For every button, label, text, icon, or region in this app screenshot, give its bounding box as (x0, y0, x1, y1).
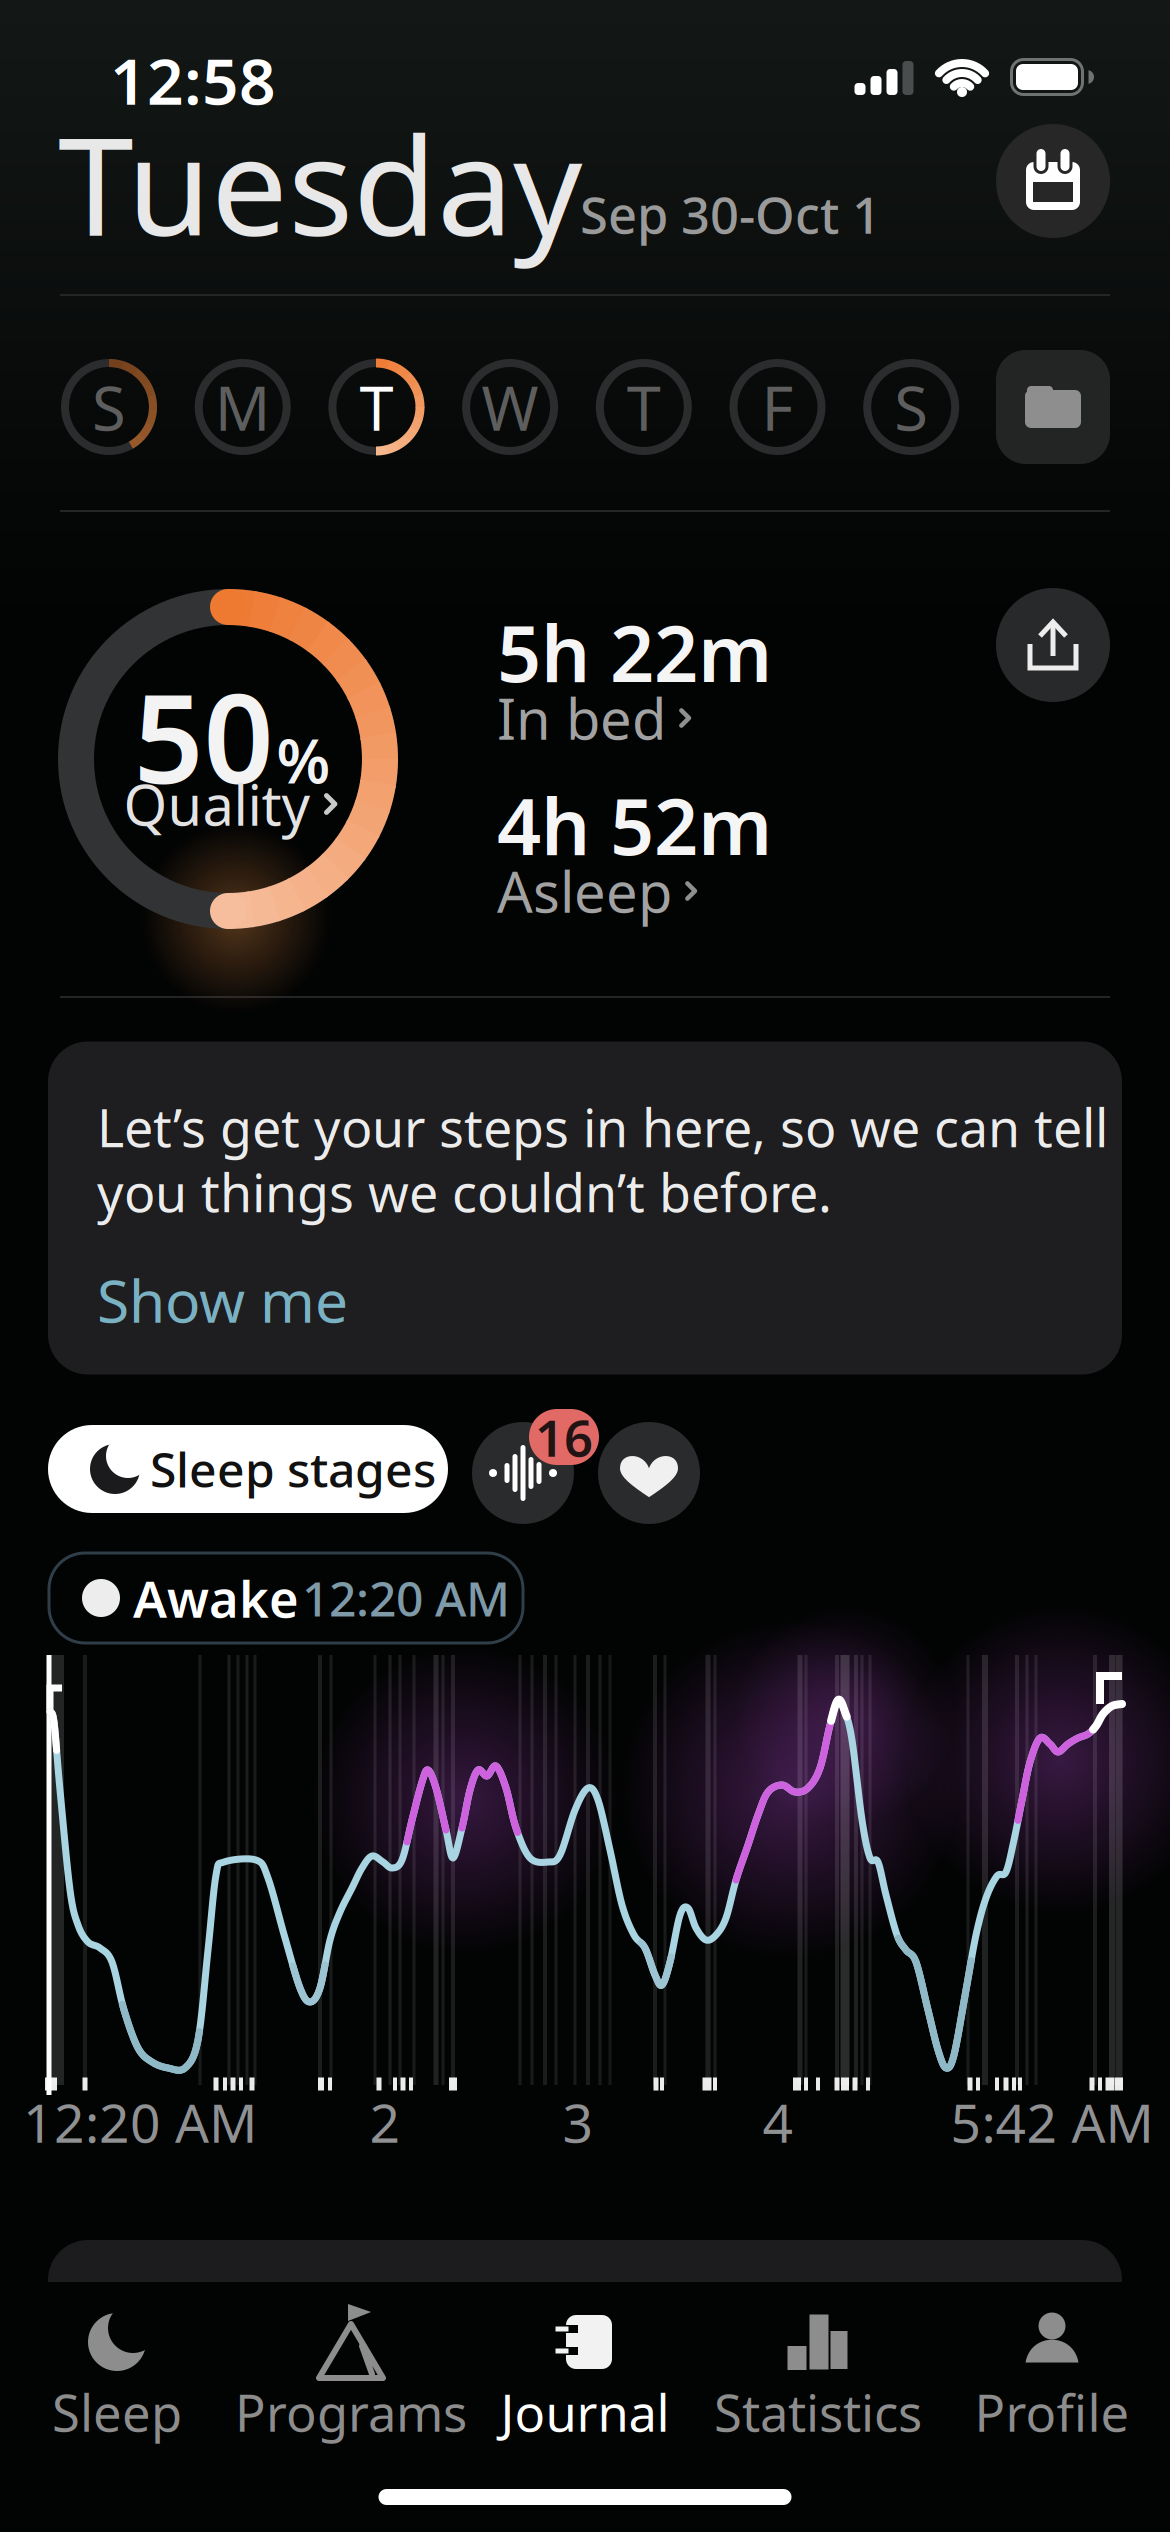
button[interactable]: Sleep stages (48, 1425, 448, 1513)
staticText: S (894, 366, 928, 448)
staticText: 12:20 AM (302, 1566, 510, 1630)
staticText: Awake (133, 1564, 299, 1632)
button[interactable]: Awake (47, 1551, 524, 1644)
button[interactable]: T (594, 357, 694, 457)
staticText: 5h 22m (497, 601, 772, 703)
staticText: Sleep (52, 2378, 182, 2446)
button[interactable]: Journal (475, 2302, 695, 2442)
button[interactable]: M (193, 357, 293, 457)
staticText: Asleep (497, 854, 672, 928)
staticText: Programs (235, 2378, 467, 2446)
staticText: 4h 52m (497, 774, 772, 876)
staticText: 50 (133, 655, 273, 817)
staticText: W (482, 366, 539, 448)
button[interactable]: Show me (97, 1265, 397, 1335)
staticText: Sep 30-Oct 1 (580, 180, 881, 248)
staticText: Tuesday (58, 93, 582, 273)
staticText: you things we couldn’t before. (97, 1157, 832, 1227)
staticText: 5:42 AM (950, 2087, 1153, 2157)
button[interactable] (996, 124, 1110, 238)
staticText: 12:20 AM (23, 2087, 257, 2157)
staticText: Sleep stages (150, 1437, 436, 1501)
staticText: Quality (123, 767, 310, 841)
staticText: 3 (562, 2087, 593, 2157)
staticText: In bed (497, 681, 666, 755)
button[interactable]: Programs (221, 2302, 481, 2442)
staticText: 4 (762, 2087, 793, 2157)
button[interactable]: Profile (952, 2302, 1152, 2442)
button[interactable] (598, 1422, 700, 1524)
button[interactable]: S (59, 357, 159, 457)
staticText: T (627, 366, 661, 448)
button[interactable]: 50 (102, 678, 362, 848)
button[interactable]: F (727, 357, 827, 457)
button[interactable]: 4h 52m (497, 788, 897, 928)
staticText: Journal (500, 2378, 669, 2446)
button[interactable]: Statistics (693, 2302, 943, 2442)
staticText: T (359, 366, 393, 448)
staticText: Let’s get your steps in here, so we can … (97, 1092, 1108, 1162)
staticText: Profile (974, 2378, 1129, 2446)
button[interactable]: W (460, 357, 560, 457)
button[interactable]: 5h 22m (497, 615, 897, 755)
staticText: 16 (535, 1403, 593, 1471)
button[interactable]: T (326, 357, 426, 457)
staticText: M (215, 366, 271, 448)
staticText: % (276, 719, 330, 800)
staticText: F (761, 366, 793, 448)
staticText: 12:58 (110, 37, 276, 122)
button[interactable] (472, 1422, 574, 1524)
button[interactable] (996, 350, 1110, 464)
button[interactable] (996, 588, 1110, 702)
staticText: 2 (369, 2087, 400, 2157)
button[interactable]: Sleep (17, 2302, 217, 2442)
button[interactable]: S (861, 357, 961, 457)
staticText: Statistics (714, 2378, 922, 2446)
staticText: Show me (97, 1261, 348, 1339)
staticText: S (92, 366, 126, 448)
